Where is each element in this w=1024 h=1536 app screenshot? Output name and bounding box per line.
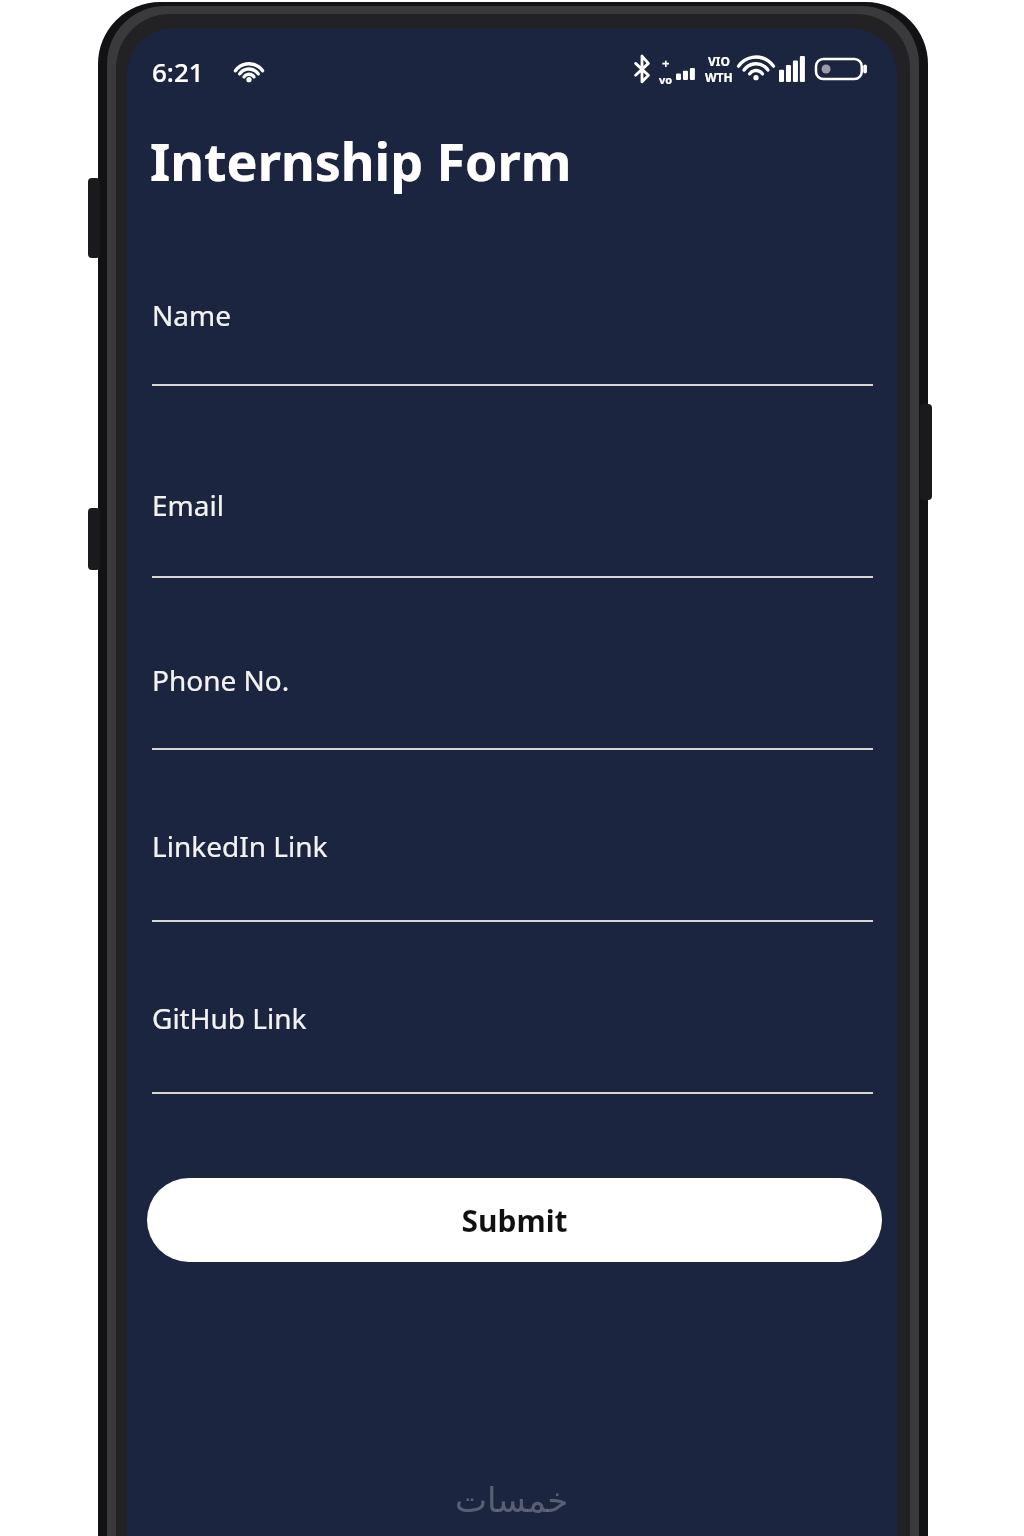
button[interactable]: Submit <box>147 1178 882 1262</box>
staticText: + <box>662 54 670 72</box>
staticText: LinkedIn Link <box>152 827 328 865</box>
staticText: GitHub Link <box>152 999 307 1037</box>
staticText: خمسات <box>455 1480 569 1520</box>
button[interactable] <box>127 647 897 768</box>
staticText: Submit <box>461 1200 568 1241</box>
button[interactable] <box>127 472 897 596</box>
button[interactable] <box>127 282 897 404</box>
staticText: Internship Form <box>150 125 572 196</box>
staticText: VIO <box>708 53 730 69</box>
staticText: Name <box>152 296 231 334</box>
button[interactable] <box>127 813 897 940</box>
staticText: Email <box>152 486 224 524</box>
staticText: Phone No. <box>152 661 290 699</box>
staticText: vo <box>659 72 673 84</box>
staticText: 6:21 <box>152 54 204 89</box>
button[interactable] <box>127 985 897 1112</box>
staticText: WTH <box>705 69 733 85</box>
